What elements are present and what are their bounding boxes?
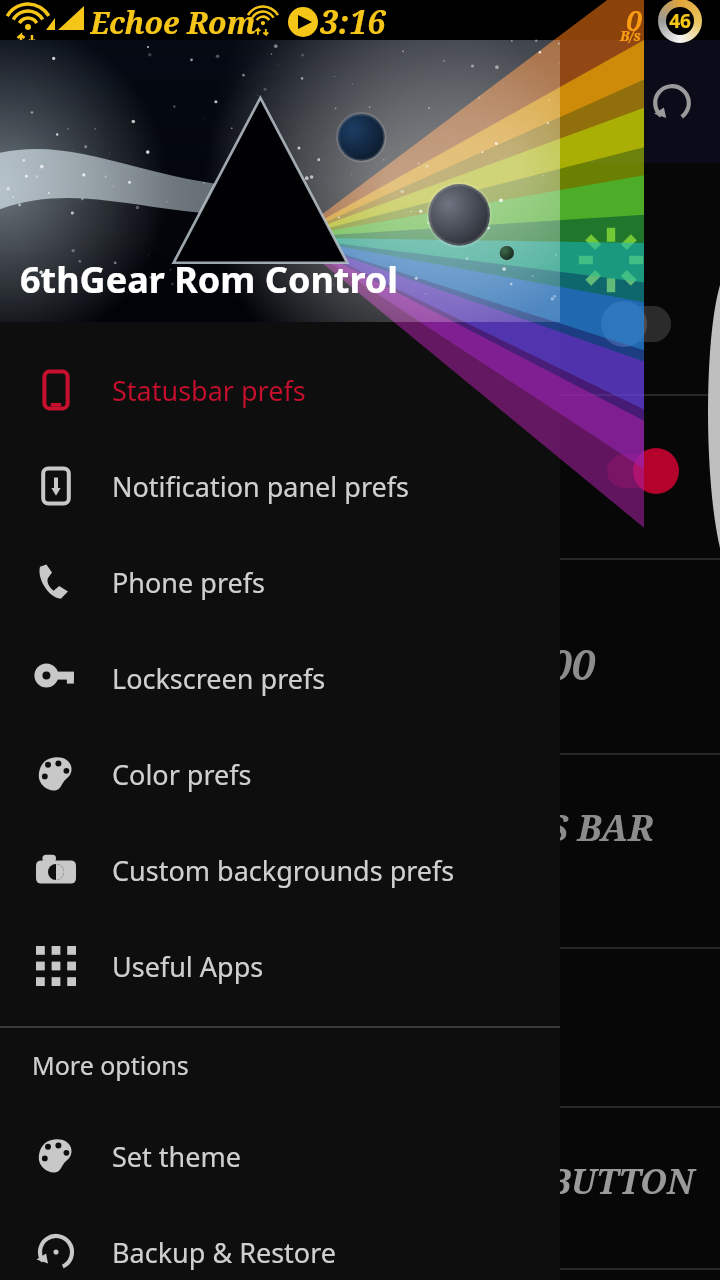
- staticText: US BAR: [520, 803, 654, 852]
- staticText: Phone prefs: [112, 564, 265, 601]
- staticText: Notification panel prefs: [112, 468, 409, 505]
- button[interactable]: Restore defaults: [644, 75, 700, 131]
- button[interactable]: Color prefs: [0, 726, 560, 822]
- staticText: 6thGear Rom Control: [20, 255, 399, 304]
- button[interactable]: [0, 396, 720, 558]
- staticText: Statusbar prefs: [112, 372, 306, 409]
- staticText: Lockscreen prefs: [112, 660, 326, 697]
- staticText: Set theme: [112, 1138, 241, 1175]
- button[interactable]: Phone prefs: [0, 534, 560, 630]
- button[interactable]: BUTTON: [0, 1108, 720, 1268]
- staticText: Useful Apps: [112, 948, 264, 985]
- staticText: BUTTON: [548, 1158, 694, 1204]
- staticText: Color prefs: [112, 756, 252, 793]
- button[interactable]: US BAR: [0, 755, 720, 947]
- button[interactable]: Backup & Restore: [0, 1204, 560, 1280]
- button[interactable]: Brightness: [0, 163, 720, 394]
- button[interactable]: Custom backgrounds prefs: [0, 822, 560, 918]
- button[interactable]: Useful Apps: [0, 918, 560, 1014]
- button[interactable]: Notification panel prefs: [0, 438, 560, 534]
- button[interactable]: [0, 949, 720, 1106]
- staticText: 00: [548, 635, 595, 692]
- button[interactable]: Lockscreen prefs: [0, 630, 560, 726]
- staticText: Backup & Restore: [112, 1234, 337, 1271]
- staticText: B/s: [620, 26, 641, 45]
- button[interactable]: Statusbar prefs: [0, 342, 560, 438]
- button[interactable]: Set theme: [0, 1108, 560, 1204]
- staticText: 3:16: [320, 0, 386, 40]
- staticText: 46: [669, 8, 691, 34]
- staticText: Custom backgrounds prefs: [112, 852, 455, 889]
- staticText: 0: [626, 1, 642, 39]
- other: Brightness: [576, 225, 646, 295]
- staticText: More options: [32, 1048, 189, 1082]
- staticText: Echoe Rom: [90, 2, 256, 42]
- button[interactable]: 00: [0, 560, 720, 753]
